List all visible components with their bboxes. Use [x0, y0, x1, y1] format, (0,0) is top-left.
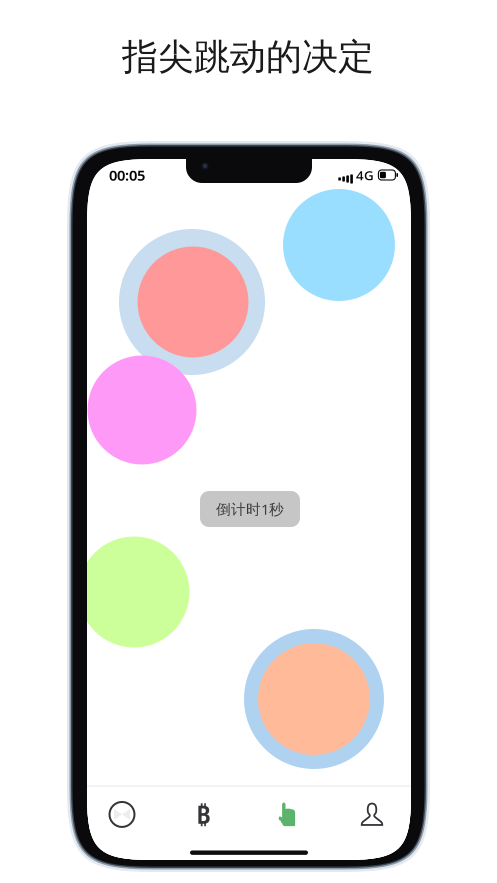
staticText: 4G: [356, 166, 374, 184]
button[interactable]: Coin toss: [161, 786, 245, 842]
staticText: 00:05: [109, 165, 145, 185]
button[interactable]: Finger tap: [245, 786, 330, 842]
staticText: 指尖跳动的决定: [122, 35, 374, 79]
button[interactable]: Profile: [330, 786, 414, 842]
staticText: 倒计时1秒: [216, 499, 284, 519]
staticText: ₿: [196, 797, 210, 831]
button[interactable]: Roulette: [83, 786, 161, 842]
